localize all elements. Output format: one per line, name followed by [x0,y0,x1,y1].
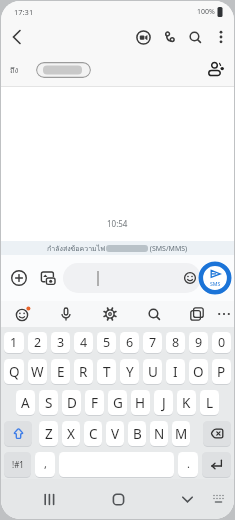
button[interactable]: SMS [198,261,232,295]
button[interactable]: 1 [4,332,24,353]
button[interactable]: N [150,421,168,446]
staticText: 2 [34,334,42,351]
staticText: 7 [149,334,157,351]
button[interactable]: G [108,390,127,415]
button[interactable]: 8 [166,332,185,353]
staticText: U [148,363,158,381]
button[interactable]: J [154,390,173,415]
button[interactable]: , [35,452,55,477]
staticText: V [111,425,120,443]
button[interactable]: 3 [51,332,70,353]
staticText: D [67,394,77,412]
staticText: K [182,394,191,412]
staticText: Q [9,363,20,381]
staticText: !#1 [12,459,24,470]
button[interactable] [130,22,156,52]
button[interactable] [9,268,29,288]
staticText: , [44,456,47,471]
button[interactable]: X [62,421,80,446]
button[interactable] [107,488,129,510]
button[interactable] [37,267,59,289]
button[interactable] [36,62,91,78]
button[interactable] [156,22,182,52]
button[interactable] [7,27,27,47]
button[interactable]: W [28,359,47,384]
staticText: 4 [80,334,88,351]
button[interactable]: K [177,390,196,415]
button[interactable]: R [74,359,93,384]
staticText: I [173,363,178,381]
button[interactable]: Y [120,359,139,384]
button[interactable] [98,302,122,326]
button[interactable]: Z [39,421,58,446]
button[interactable]: M [172,421,190,446]
staticText: T [103,363,111,381]
staticText: X [67,425,75,443]
staticText: . [187,456,190,471]
button[interactable]: V [106,421,124,446]
button[interactable]: 0 [212,332,231,353]
button[interactable] [182,22,208,52]
button[interactable]: 4 [74,332,93,353]
button[interactable] [11,302,35,326]
staticText: 10:54 [107,218,128,229]
button[interactable]: H [131,390,150,415]
button[interactable]: D [62,390,81,415]
staticText: L [206,394,214,412]
button[interactable]: 7 [143,332,162,353]
button[interactable]: I [166,359,185,384]
button[interactable] [204,58,228,82]
button[interactable] [202,452,231,477]
staticText: B [133,425,142,443]
staticText: 0 [218,334,226,351]
button[interactable]: L [200,390,219,415]
button[interactable] [142,302,166,326]
button[interactable]: P [212,359,231,384]
staticText: G [113,394,123,412]
staticText: 17:31 [14,7,34,17]
button[interactable]: 2 [28,332,47,353]
staticText: 3 [57,334,65,351]
button[interactable]: 9 [189,332,208,353]
staticText: 1 [10,334,18,351]
staticText: (SMS/MMS) [148,244,188,254]
staticText: W [31,363,44,381]
button[interactable]: 5 [97,332,116,353]
button[interactable] [208,22,234,52]
staticText: M [175,425,188,443]
button[interactable]: 6 [120,332,139,353]
staticText: 6 [126,334,134,351]
button[interactable] [213,302,234,326]
staticText: A [21,394,30,412]
button[interactable]: F [85,390,104,415]
button[interactable] [38,488,60,510]
button[interactable]: . [178,452,198,477]
staticText: R [79,363,88,381]
staticText: O [193,363,204,381]
button[interactable]: !#1 [4,452,31,477]
button[interactable]: E [51,359,70,384]
staticText: ถึง [10,64,19,76]
button[interactable] [63,263,201,293]
button[interactable]: C [84,421,102,446]
staticText: Z [45,425,53,443]
button[interactable] [210,491,226,507]
button[interactable]: B [128,421,146,446]
button[interactable]: S [39,390,58,415]
button[interactable]: A [16,390,35,415]
button[interactable] [54,302,78,326]
staticText: Y [126,363,134,381]
button[interactable] [176,488,198,510]
button[interactable] [203,421,231,446]
staticText: 5 [103,334,111,351]
button[interactable]: Q [4,359,24,384]
staticText: J [162,394,166,412]
button[interactable]: T [97,359,116,384]
button[interactable]: O [189,359,208,384]
staticText: P [217,363,226,381]
button[interactable]: U [143,359,162,384]
button[interactable] [185,302,209,326]
button[interactable] [4,421,32,446]
staticText: H [135,394,146,412]
